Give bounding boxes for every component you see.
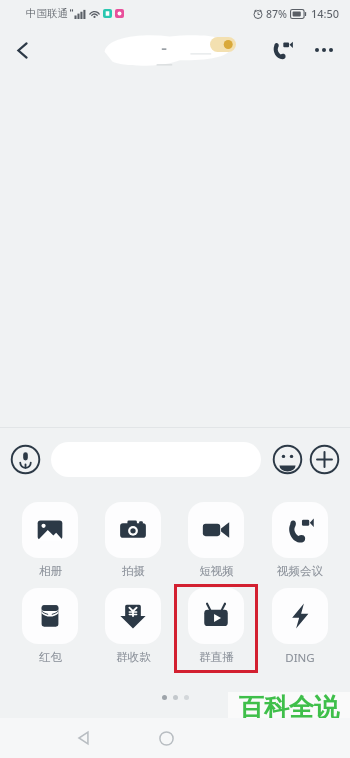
button[interactable]: DING: [272, 588, 328, 666]
staticText: DING: [285, 650, 315, 666]
button[interactable]: 拍摄: [105, 502, 161, 578]
button[interactable]: 短视频: [188, 502, 244, 578]
button[interactable]: 群直播: [188, 588, 244, 664]
staticText: 短视频: [199, 564, 234, 578]
staticText: 相册: [39, 564, 62, 578]
staticText: 拍摄: [122, 564, 145, 578]
button[interactable]: Emoji: [272, 444, 303, 475]
staticText: 百科全说: [239, 692, 339, 723]
staticText: 群收款: [116, 650, 151, 664]
button[interactable]: 红包: [22, 588, 78, 664]
staticText: 14:50: [311, 6, 340, 21]
staticText: 视频会议: [277, 564, 323, 578]
button[interactable]: Home: [148, 720, 184, 756]
button[interactable]: Back: [0, 27, 46, 73]
button[interactable]: More options: [304, 30, 344, 70]
button[interactable]: 视频会议: [272, 502, 328, 578]
button[interactable]: Back: [66, 720, 102, 756]
staticText: 87%: [266, 7, 287, 21]
staticText: 群直播: [199, 650, 234, 664]
button[interactable]: Voice message: [10, 444, 41, 475]
button[interactable]: More actions: [309, 444, 340, 475]
button[interactable]: 相册: [22, 502, 78, 578]
staticText: 红包: [39, 650, 62, 664]
button[interactable]: Video call: [260, 28, 304, 72]
staticText: 中国联通: [26, 7, 68, 20]
button[interactable]: 群收款: [105, 588, 161, 664]
